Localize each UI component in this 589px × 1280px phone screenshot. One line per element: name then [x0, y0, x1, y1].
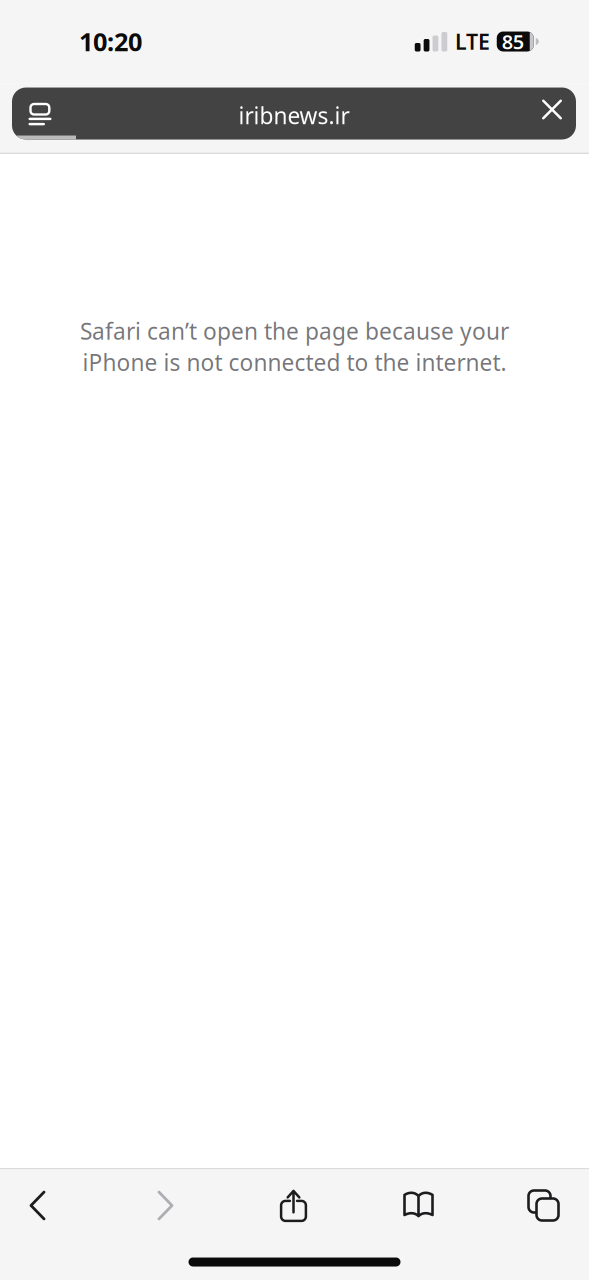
- staticText: Safari can’t open the page because your: [80, 316, 509, 346]
- button[interactable]: Bookmarks: [380, 1169, 456, 1241]
- button[interactable]: Page settings: [12, 87, 68, 139]
- staticText: iribnews.ir: [238, 100, 349, 130]
- button[interactable]: Share: [255, 1169, 331, 1241]
- staticText: iPhone is not connected to the internet.: [82, 347, 506, 377]
- button[interactable]: Tabs: [505, 1169, 581, 1241]
- button[interactable]: Stop loading: [528, 87, 576, 139]
- button[interactable]: Back: [0, 1169, 75, 1241]
- staticText: LTE: [455, 27, 490, 56]
- staticText: 10:20: [79, 25, 142, 58]
- staticText: 85: [502, 28, 524, 55]
- button[interactable]: Forward: [127, 1169, 203, 1241]
